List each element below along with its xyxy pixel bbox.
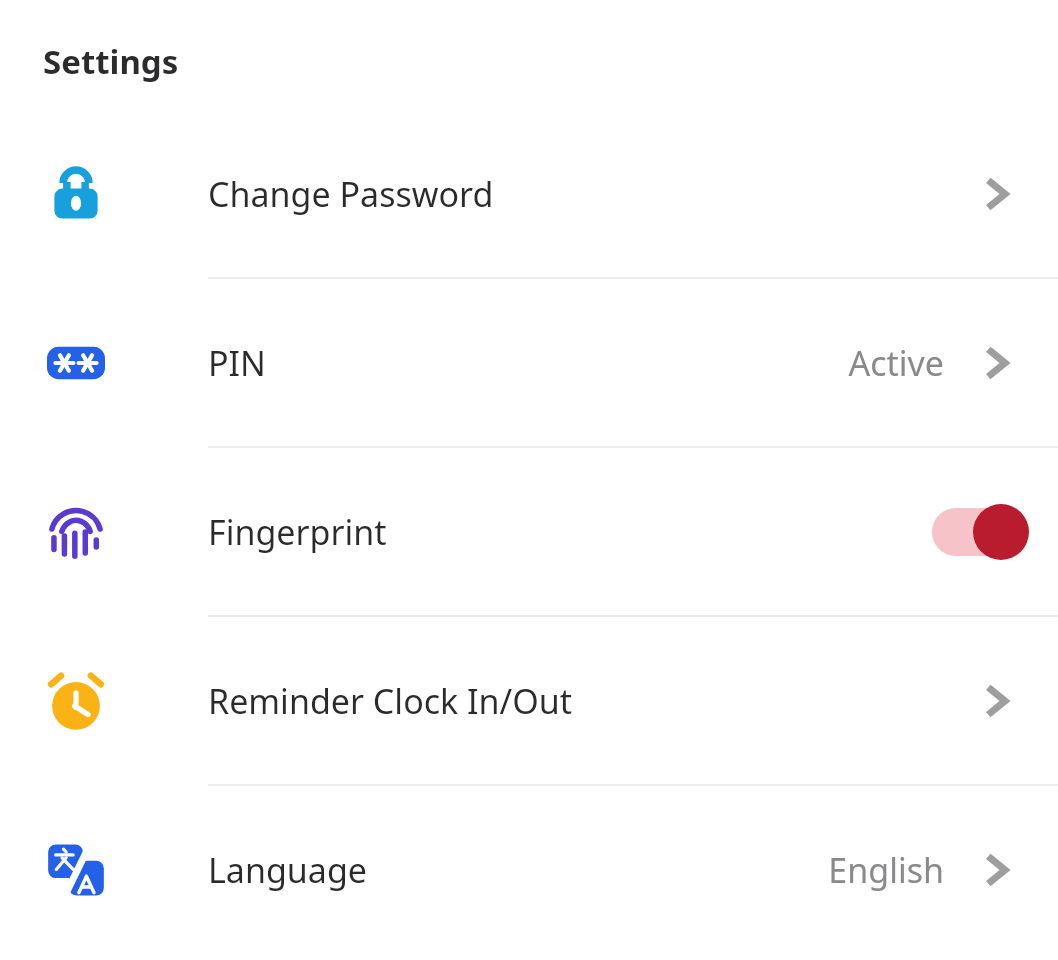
button[interactable]: Fingerprint <box>0 448 1058 615</box>
staticText: Fingerprint <box>208 509 387 555</box>
staticText: Change Password <box>208 171 494 217</box>
button[interactable]: Open Language <box>966 838 1030 902</box>
staticText: Language <box>208 847 367 893</box>
staticText: Settings <box>43 39 179 84</box>
staticText: English <box>828 847 944 893</box>
staticText: Reminder Clock In/Out <box>208 678 573 724</box>
staticText: Active <box>848 340 944 386</box>
staticText: PIN <box>208 340 266 386</box>
button[interactable]: Reminder Clock In/Out <box>0 617 1058 784</box>
button[interactable]: Open Reminder Clock In/Out <box>966 669 1030 733</box>
button[interactable]: Open Change Password <box>966 162 1030 226</box>
button[interactable]: PIN <box>0 279 1058 446</box>
button[interactable]: Language <box>0 786 1058 953</box>
button[interactable]: Change Password <box>0 110 1058 277</box>
button[interactable]: Fingerprint toggle, on <box>932 503 1020 561</box>
button[interactable]: Open PIN <box>966 331 1030 395</box>
